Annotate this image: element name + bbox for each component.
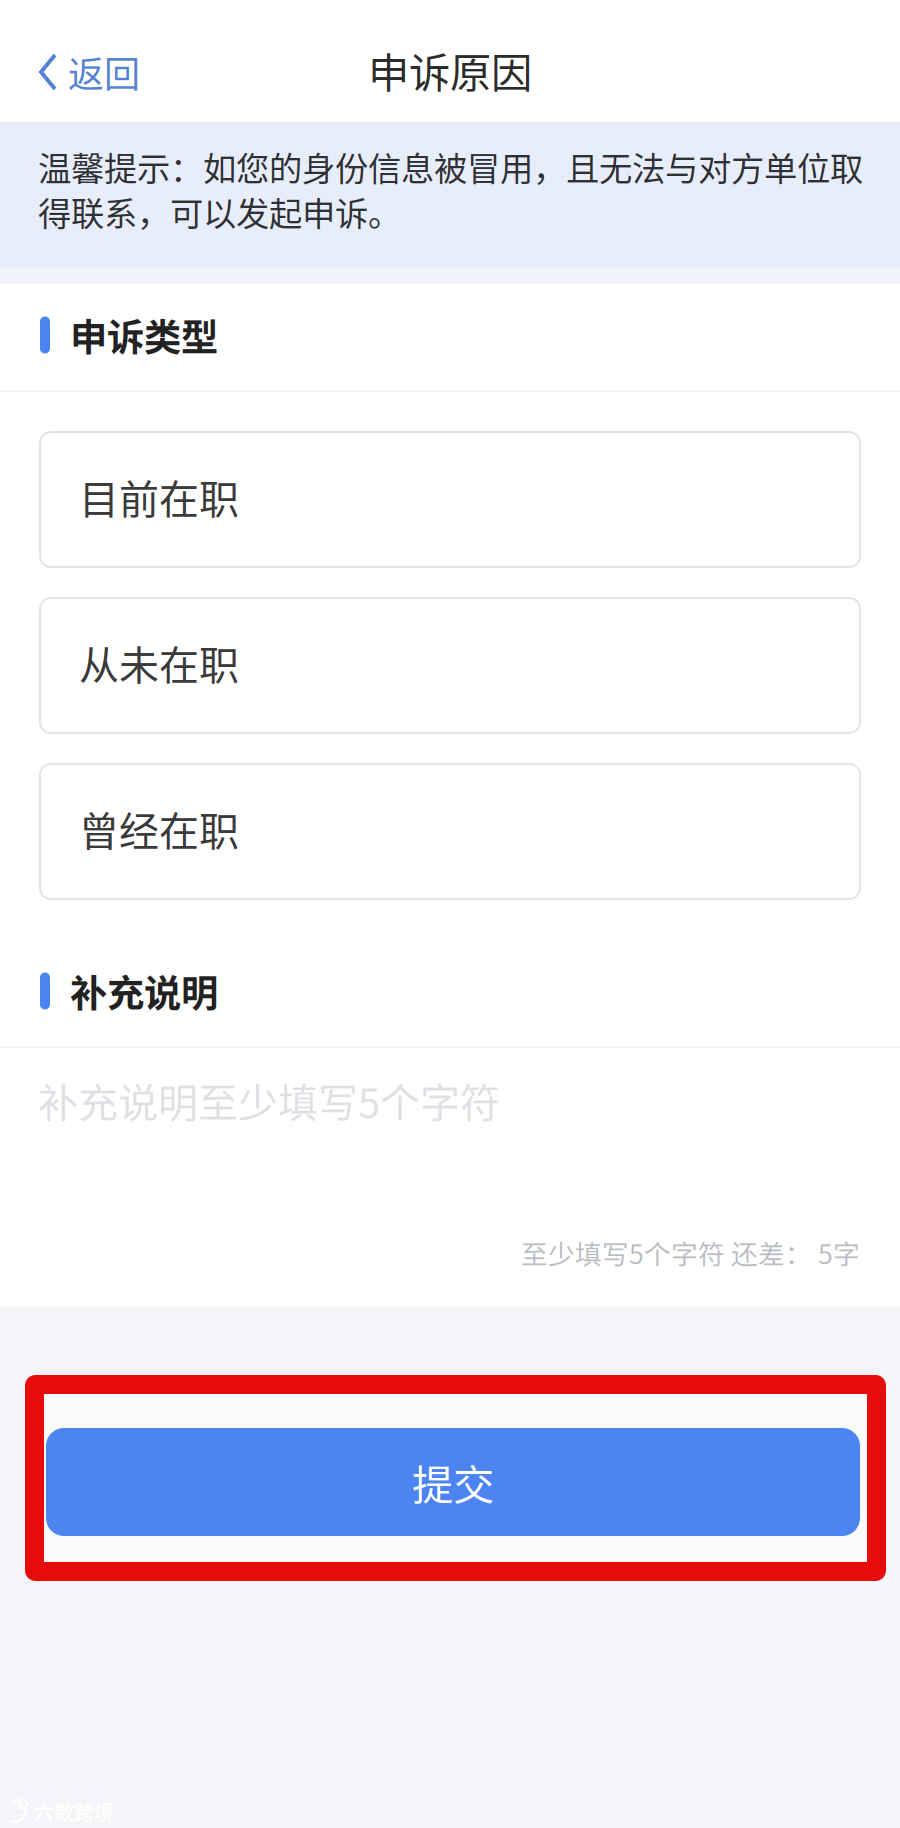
staticText: 温馨提示：如您的身份信息被冒用，且无法与对方单位取: [38, 142, 863, 191]
staticText: 申诉类型: [70, 308, 218, 362]
staticText: 申诉原因: [368, 40, 532, 100]
staticText: 从未在职: [79, 633, 239, 691]
staticText: 补充说明: [70, 964, 218, 1018]
staticText: 提交: [412, 1452, 494, 1512]
staticText: 至少填写5个字符 还差： 5字: [521, 1233, 860, 1272]
staticText: 返回: [68, 46, 140, 98]
staticText: 六数跨境: [34, 1797, 114, 1826]
button[interactable]: 提交: [0, 1375, 900, 1581]
button[interactable]: 补充说明至少填写5个字符: [0, 1048, 900, 1307]
staticText: 目前在职: [79, 467, 239, 525]
button[interactable]: 从未在职: [0, 598, 900, 733]
button[interactable]: 返回: [0, 0, 156, 128]
button[interactable]: 曾经在职: [0, 764, 900, 899]
staticText: 得联系，可以发起申诉。: [38, 187, 401, 236]
staticText: 补充说明至少填写5个字符: [38, 1071, 500, 1129]
staticText: 曾经在职: [79, 799, 239, 857]
button[interactable]: 目前在职: [0, 432, 900, 567]
